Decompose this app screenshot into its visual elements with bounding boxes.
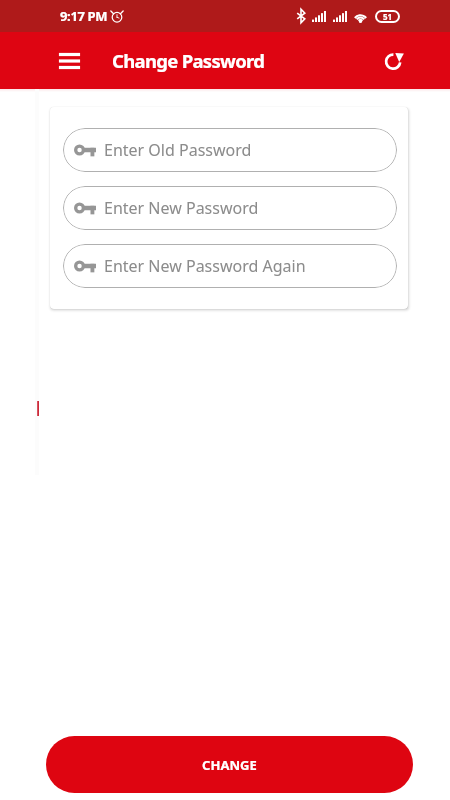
button[interactable]: Enter New Password — [63, 186, 397, 230]
button[interactable]: Enter Old Password — [63, 128, 397, 172]
staticText: CHANGE — [202, 756, 257, 774]
button[interactable]: CHANGE — [46, 736, 413, 793]
staticText: Change Password — [112, 48, 265, 73]
staticText: 9:17 PM — [60, 7, 108, 25]
button[interactable]: Refresh — [385, 51, 404, 70]
button[interactable]: Enter New Password Again — [63, 244, 397, 288]
staticText: Enter New Password — [104, 197, 259, 219]
staticText: Enter New Password Again — [104, 255, 306, 277]
staticText: 51 — [383, 11, 393, 22]
button[interactable]: Open navigation menu — [58, 50, 81, 72]
staticText: Enter Old Password — [104, 139, 252, 161]
